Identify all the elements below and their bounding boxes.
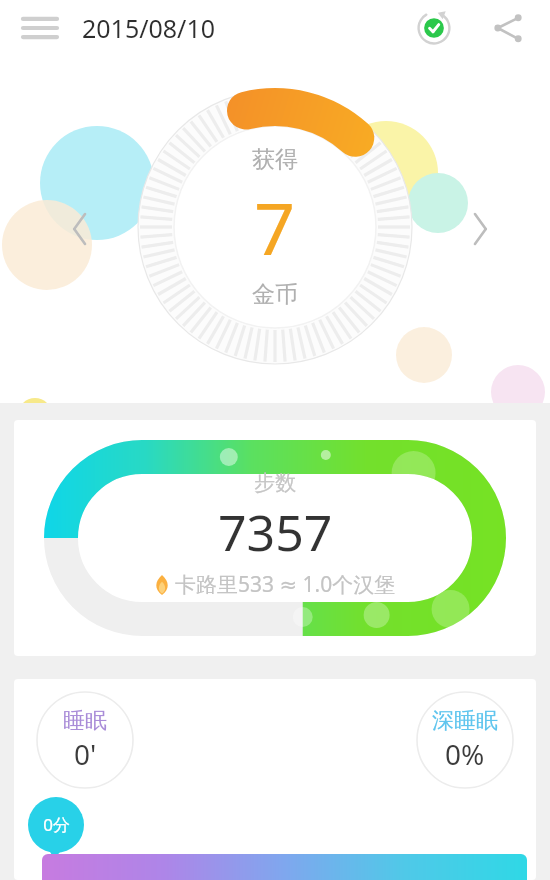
staticText: 0% [445, 735, 485, 773]
staticText: 7357 [218, 498, 333, 566]
button[interactable]: Sync [410, 4, 458, 52]
button[interactable]: 获得 [138, 90, 412, 364]
staticText: 卡路里533 ≈ 1.0个汉堡 [175, 570, 396, 599]
staticText: 金币 [252, 280, 298, 309]
button[interactable]: Next day [458, 207, 502, 251]
button[interactable]: Menu [14, 2, 66, 54]
staticText: 0分 [43, 813, 70, 836]
staticText: 获得 [252, 145, 298, 174]
button[interactable]: Share [482, 2, 534, 54]
staticText: 深睡眠 [432, 707, 498, 735]
staticText: 0' [74, 735, 97, 773]
button[interactable]: 步数 [14, 420, 536, 656]
staticText: 步数 [254, 470, 296, 496]
button[interactable]: Previous day [58, 207, 102, 251]
staticText: 2015/08/10 [82, 11, 216, 45]
button[interactable]: 睡眠 [14, 679, 536, 880]
staticText: 7 [254, 178, 296, 276]
staticText: 睡眠 [63, 707, 107, 735]
